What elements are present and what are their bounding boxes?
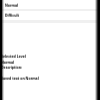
- staticText: Description:: [1, 65, 23, 70]
- button[interactable]: Normal: [0, 1, 100, 10]
- staticText: Description:: [1, 64, 23, 69]
- staticText: Selected Level: [1, 53, 26, 58]
- staticText: Difficult: [5, 12, 19, 17]
- staticText: Difficult: [5, 13, 19, 18]
- staticText: Saved text on Normal: [1, 76, 39, 81]
- staticText: Saved text on Normal: [1, 75, 39, 80]
- button[interactable]: Difficult: [0, 11, 100, 20]
- staticText: Normal: [1, 60, 15, 65]
- staticText: Normal: [5, 3, 19, 8]
- staticText: Selected Level: [1, 54, 26, 59]
- staticText: Normal: [1, 59, 15, 64]
- staticText: Normal: [5, 2, 19, 7]
